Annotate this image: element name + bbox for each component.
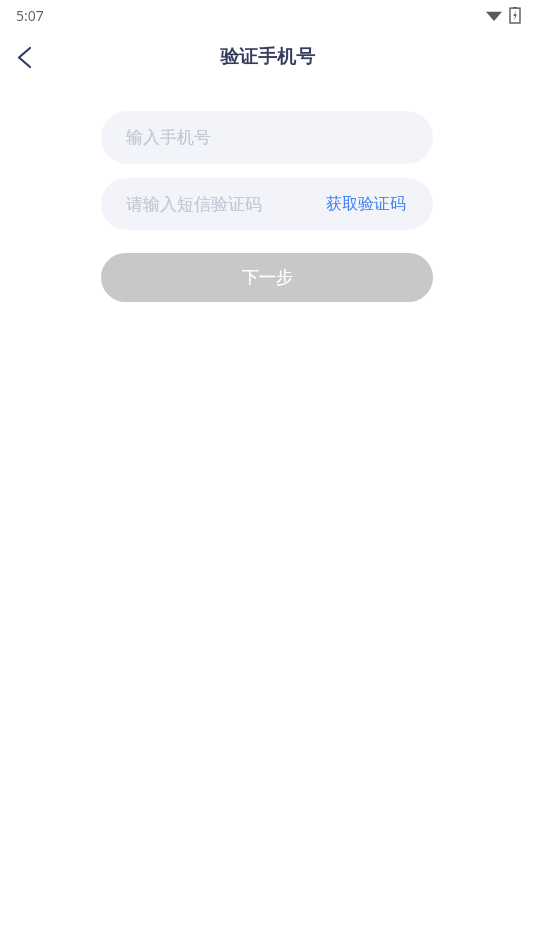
staticText: 获取验证码 (326, 194, 406, 214)
button[interactable]: 获取验证码 (299, 178, 433, 230)
staticText: 请输入短信验证码 (126, 194, 262, 215)
staticText: 5:07 (16, 6, 44, 25)
button[interactable]: 下一步 (101, 253, 433, 302)
staticText: 输入手机号 (126, 127, 211, 148)
staticText: 下一步 (242, 267, 293, 288)
button[interactable]: 输入手机号 (101, 111, 433, 164)
button[interactable]: Back (0, 33, 48, 81)
button[interactable]: 请输入短信验证码 (101, 178, 433, 230)
staticText: 验证手机号 (220, 45, 315, 69)
